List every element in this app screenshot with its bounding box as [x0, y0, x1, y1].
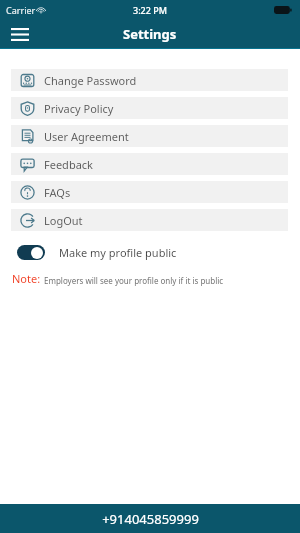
- button[interactable]: Feedback: [11, 153, 288, 175]
- button[interactable]: Change Password: [11, 69, 288, 91]
- staticText: Carrier: [6, 4, 36, 16]
- staticText: LogOut: [44, 213, 83, 228]
- staticText: Privacy Policy: [44, 101, 114, 116]
- staticText: FAQs: [44, 185, 71, 200]
- staticText: User Agreement: [44, 129, 129, 144]
- button[interactable]: Menu: [6, 20, 34, 48]
- button[interactable]: User Agreement: [11, 125, 288, 147]
- button[interactable]: Privacy Policy: [11, 97, 288, 119]
- button[interactable]: LogOut: [11, 209, 288, 231]
- staticText: Employers will see your profile only if …: [44, 275, 224, 286]
- button[interactable]: +914045859999: [0, 504, 300, 533]
- staticText: +914045859999: [102, 510, 199, 528]
- staticText: Feedback: [44, 157, 93, 172]
- staticText: Settings: [123, 25, 177, 43]
- button[interactable]: FAQs: [11, 181, 288, 203]
- staticText: 3:22 PM: [133, 4, 167, 16]
- staticText: Note:: [12, 271, 41, 286]
- staticText: Make my profile public: [59, 245, 177, 260]
- button[interactable]: Make my profile public: [11, 239, 288, 265]
- staticText: Change Password: [44, 73, 137, 88]
